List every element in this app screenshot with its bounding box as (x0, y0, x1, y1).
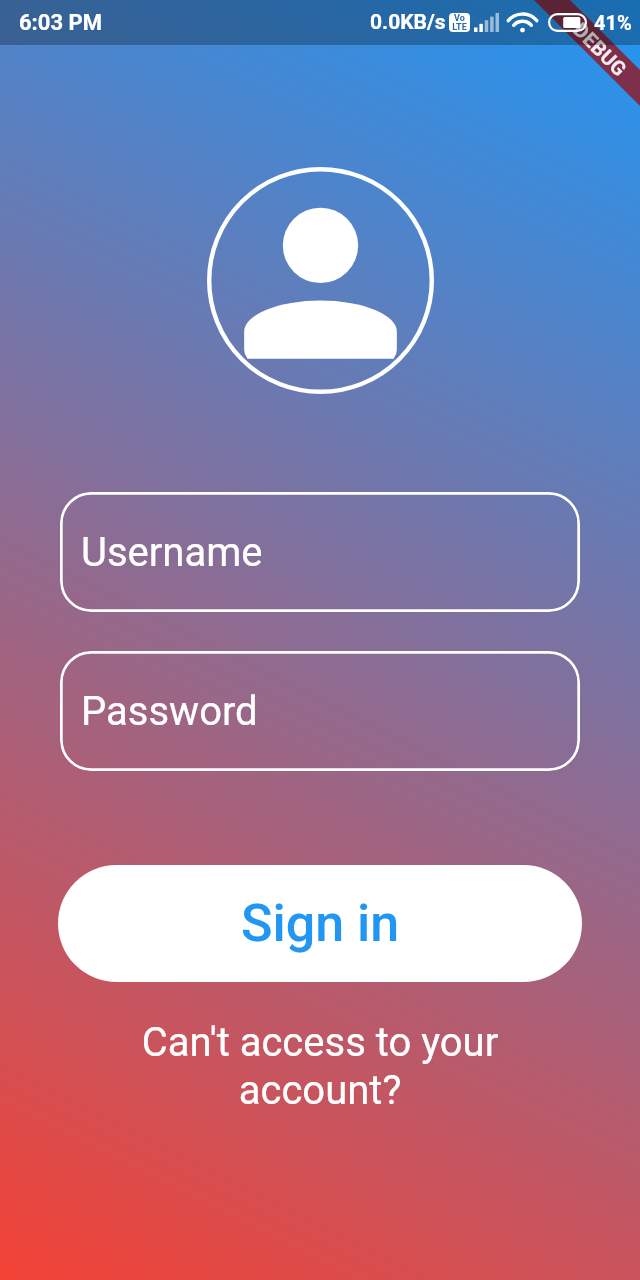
staticText: 0.0KB/s (370, 10, 446, 35)
button[interactable]: Sign in (58, 865, 582, 982)
staticText: Can't access to your account? (120, 1019, 520, 1114)
other: VoLTE (449, 13, 470, 32)
staticText: Username (81, 529, 263, 576)
staticText: Sign in (241, 893, 400, 954)
button[interactable]: Password (60, 651, 580, 771)
staticText: 6:03 PM (19, 10, 102, 36)
button[interactable]: Can't access to your account? (120, 1019, 520, 1114)
other: Battery 41 percent (548, 13, 587, 32)
other: Mobile signal (474, 13, 499, 32)
other: Account avatar (207, 167, 434, 394)
button[interactable]: Username (60, 492, 580, 612)
other: Wi-Fi (509, 12, 536, 33)
staticText: Password (81, 688, 258, 735)
staticText: Vo LTE (452, 13, 467, 32)
staticText: DEBUG (569, 18, 632, 81)
staticText: 41% (594, 11, 632, 34)
